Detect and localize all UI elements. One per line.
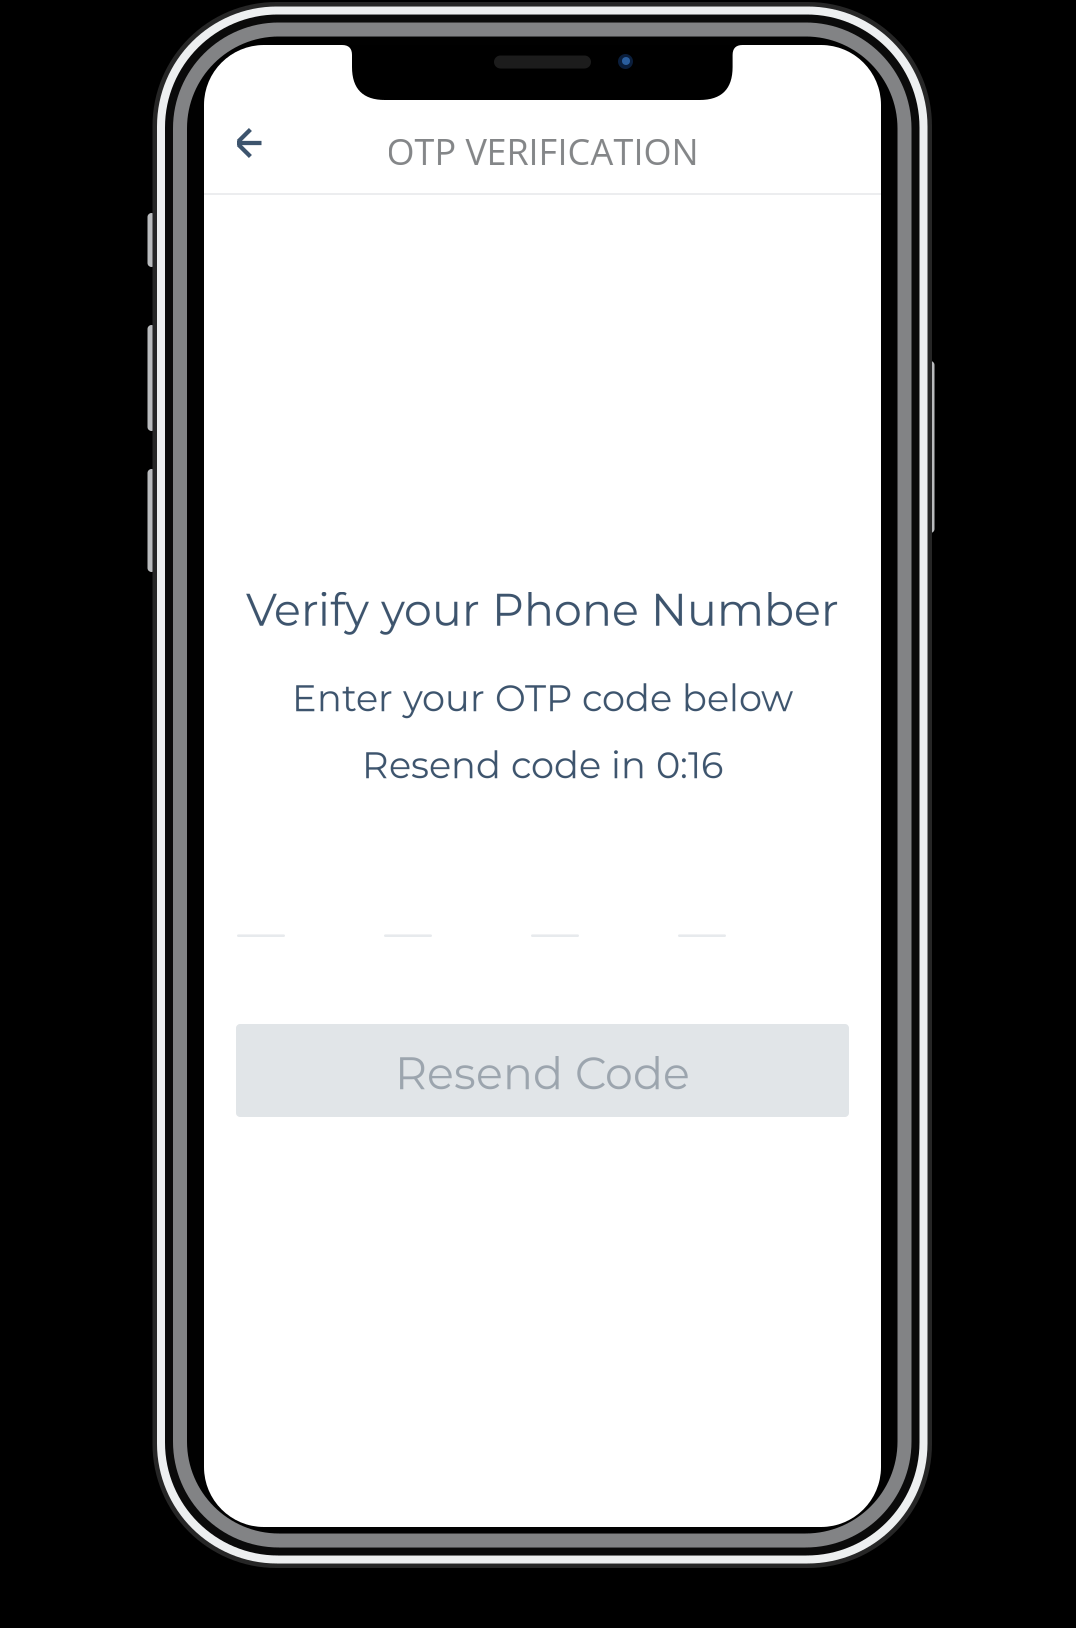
button[interactable]: Resend Code [236, 1024, 849, 1117]
staticText: OTP VERIFICATION [386, 126, 698, 175]
staticText: Resend Code [395, 1046, 690, 1100]
staticText: Verify your Phone Number [246, 583, 839, 637]
staticText: Enter your OTP code below [292, 676, 793, 720]
button[interactable]: Back [214, 107, 284, 179]
staticText: Resend code in 0:16 [362, 743, 723, 787]
